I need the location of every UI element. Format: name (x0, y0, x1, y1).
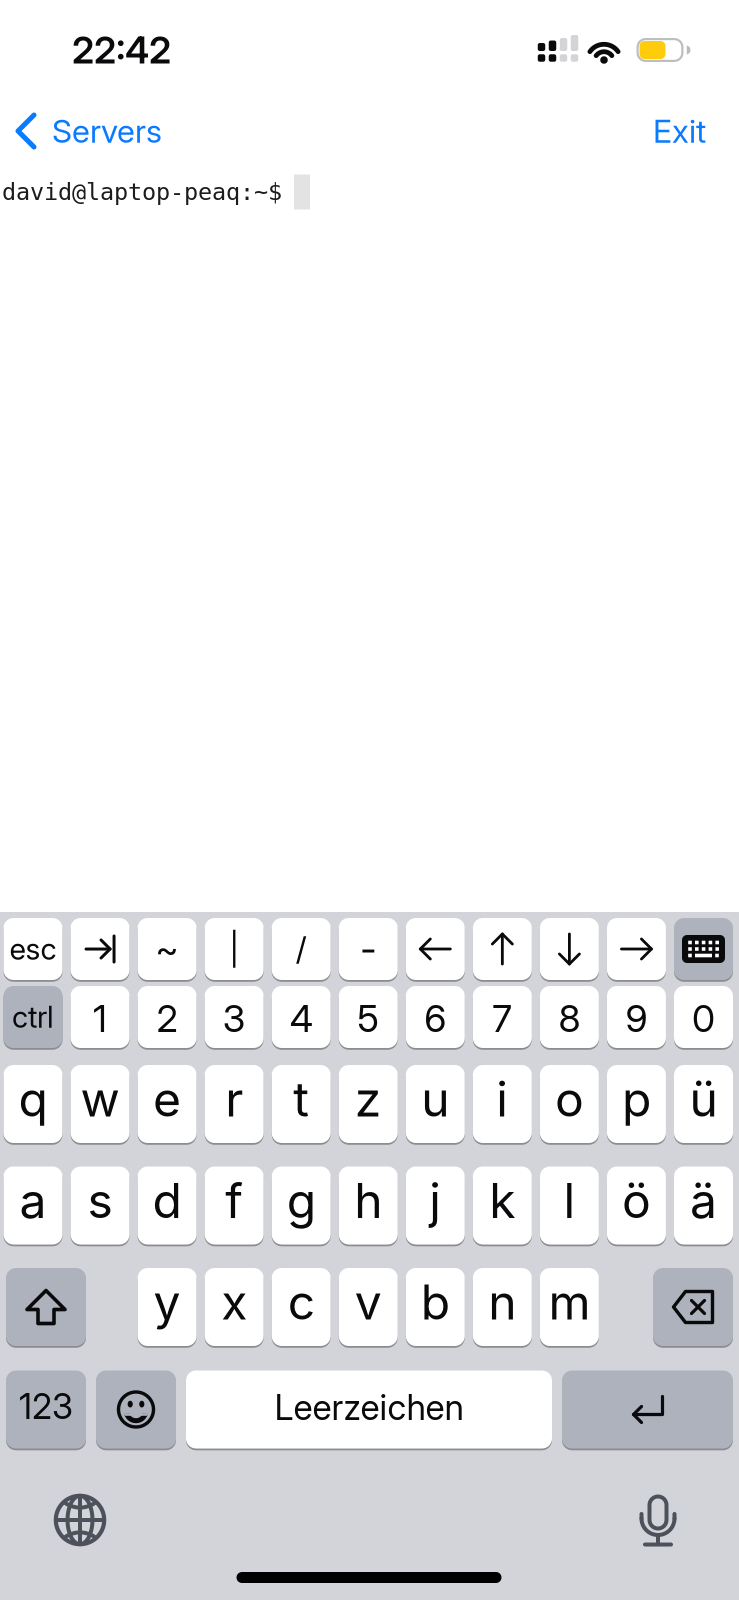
button[interactable]: Left arrow (406, 917, 465, 981)
staticText: m (548, 1274, 590, 1330)
staticText: t (293, 1071, 309, 1127)
staticText: q (18, 1071, 47, 1127)
button[interactable]: e (138, 1064, 197, 1144)
button[interactable]: k (473, 1165, 532, 1245)
button[interactable]: Right arrow (607, 917, 666, 981)
button[interactable]: u (406, 1064, 465, 1144)
staticText: c (288, 1274, 315, 1330)
staticText: h (354, 1172, 382, 1229)
button[interactable]: esc (3, 917, 62, 981)
button[interactable]: 6 (406, 985, 465, 1049)
staticText: | (229, 930, 239, 968)
staticText: 0 (692, 996, 715, 1040)
button[interactable]: 7 (473, 985, 532, 1049)
staticText: z (355, 1071, 382, 1127)
button[interactable]: v (339, 1267, 398, 1347)
button[interactable]: 5 (339, 985, 398, 1049)
button[interactable]: c (272, 1267, 331, 1347)
button[interactable]: Exit (653, 112, 706, 150)
button[interactable]: a (3, 1165, 62, 1245)
button[interactable]: 9 (607, 985, 666, 1049)
button[interactable]: Delete (653, 1267, 733, 1347)
button[interactable]: Next keyboard (50, 1490, 110, 1550)
staticText: ä (690, 1172, 717, 1229)
button[interactable]: h (339, 1165, 398, 1245)
staticText: l (563, 1172, 575, 1229)
button[interactable]: m (540, 1267, 599, 1347)
staticText: 1 (93, 996, 107, 1040)
button[interactable]: j (406, 1165, 465, 1245)
staticText: 4 (290, 996, 313, 1040)
button[interactable]: f (205, 1165, 264, 1245)
button[interactable]: o (540, 1064, 599, 1144)
button[interactable]: 8 (540, 985, 599, 1049)
staticText: r (225, 1071, 243, 1127)
button[interactable]: z (339, 1064, 398, 1144)
staticText: ö (622, 1172, 651, 1229)
button[interactable]: 123 (6, 1369, 86, 1449)
staticText: e (153, 1071, 181, 1127)
button[interactable]: x (205, 1267, 264, 1347)
button[interactable]: d (138, 1165, 197, 1245)
button[interactable]: - (339, 917, 398, 981)
button[interactable]: Return (562, 1369, 733, 1449)
button[interactable]: Leerzeichen (186, 1369, 552, 1449)
staticText: g (287, 1172, 316, 1229)
staticText: b (421, 1274, 450, 1330)
button[interactable]: 0 (674, 985, 733, 1049)
button[interactable]: | (205, 917, 264, 981)
staticText: u (421, 1071, 449, 1127)
button[interactable]: ctrl (3, 985, 62, 1049)
staticText: p (622, 1071, 651, 1127)
staticText: s (87, 1172, 112, 1229)
staticText: n (488, 1274, 516, 1330)
staticText: a (19, 1172, 46, 1229)
button[interactable]: s (70, 1165, 129, 1245)
button[interactable]: n (473, 1267, 532, 1347)
staticText: f (225, 1172, 243, 1229)
button[interactable]: Back to Servers (16, 112, 162, 150)
button[interactable]: g (272, 1165, 331, 1245)
staticText: ctrl (12, 1000, 54, 1034)
button[interactable]: / (272, 917, 331, 981)
staticText: Leerzeichen (274, 1387, 463, 1428)
button[interactable]: i (473, 1064, 532, 1144)
staticText: d (153, 1172, 182, 1229)
button[interactable]: 3 (205, 985, 264, 1049)
staticText: i (496, 1071, 508, 1127)
staticText: ~ (156, 928, 179, 970)
button[interactable]: w (70, 1064, 129, 1144)
button[interactable]: 2 (138, 985, 197, 1049)
button[interactable]: y (138, 1267, 197, 1347)
button[interactable]: l (540, 1165, 599, 1245)
staticText: w (80, 1071, 119, 1127)
button[interactable]: Down arrow (540, 917, 599, 981)
button[interactable]: Shift (6, 1267, 86, 1347)
staticText: ü (689, 1071, 717, 1127)
button[interactable]: p (607, 1064, 666, 1144)
button[interactable]: Dictation (633, 1491, 683, 1551)
button[interactable]: r (205, 1064, 264, 1144)
staticText: Servers (52, 112, 162, 150)
button[interactable]: ü (674, 1064, 733, 1144)
staticText: 6 (424, 996, 446, 1040)
button[interactable]: b (406, 1267, 465, 1347)
button[interactable]: ä (674, 1165, 733, 1245)
button[interactable]: Dismiss keyboard (674, 917, 733, 981)
staticText: j (429, 1172, 441, 1229)
button[interactable]: Up arrow (473, 917, 532, 981)
staticText: 8 (558, 996, 580, 1040)
staticText: Exit (653, 112, 706, 150)
staticText: 22:42 (72, 28, 171, 72)
button[interactable]: Tab (70, 917, 129, 981)
button[interactable]: 4 (272, 985, 331, 1049)
button[interactable]: t (272, 1064, 331, 1144)
button[interactable]: ~ (138, 917, 197, 981)
button[interactable]: q (3, 1064, 62, 1144)
button[interactable]: Emoji (96, 1369, 176, 1449)
staticText: 7 (492, 996, 512, 1040)
staticText: 123 (19, 1386, 73, 1427)
button[interactable]: ö (607, 1165, 666, 1245)
button[interactable]: 1 (70, 985, 129, 1049)
staticText: - (360, 927, 376, 971)
